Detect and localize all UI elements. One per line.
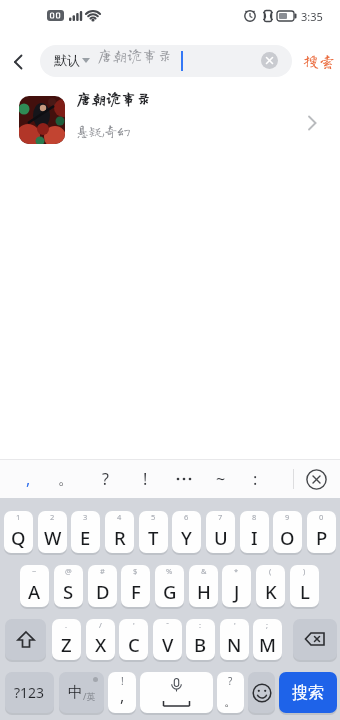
staticText: D <box>96 579 110 604</box>
staticText: @ <box>65 566 72 576</box>
staticText: ?123 <box>14 683 45 702</box>
staticText: Y <box>181 525 192 550</box>
staticText: 搜索 <box>292 683 324 703</box>
staticText: 9 <box>285 512 290 522</box>
staticText: ? <box>228 674 233 688</box>
staticText: 2 <box>50 512 55 522</box>
button[interactable]: ?123 <box>5 672 54 713</box>
staticText: S <box>63 579 74 604</box>
button[interactable] <box>293 619 337 660</box>
staticText: I <box>251 525 258 550</box>
button[interactable]: . <box>52 619 81 660</box>
button[interactable]: @ <box>54 565 83 607</box>
button[interactable] <box>140 672 213 713</box>
button[interactable] <box>248 672 275 713</box>
button[interactable]: , <box>14 460 42 498</box>
staticText: E <box>80 525 91 550</box>
staticText: 8 <box>252 512 257 522</box>
staticText: ' <box>133 620 135 630</box>
button[interactable]: 默认 <box>40 45 292 77</box>
button[interactable]: 7 <box>206 511 235 553</box>
button[interactable]: 。 <box>52 460 80 498</box>
staticText: K <box>265 579 277 604</box>
staticText: 搜索 <box>303 53 336 69</box>
button[interactable] <box>170 460 198 498</box>
button[interactable]: ~ <box>20 565 49 607</box>
button[interactable]: 搜索 <box>298 46 340 76</box>
staticText: 3 <box>83 512 88 522</box>
button[interactable]: ! <box>108 672 136 713</box>
staticText: C <box>128 632 140 657</box>
button[interactable]: ? <box>217 672 244 713</box>
staticText: F <box>131 579 141 604</box>
staticText: / <box>99 620 102 630</box>
staticText: 1 <box>16 512 21 522</box>
button[interactable]: / <box>86 619 115 660</box>
staticText: : <box>253 468 258 490</box>
staticText: /英 <box>83 690 96 702</box>
staticText: & <box>201 566 207 576</box>
button[interactable]: ˇ <box>153 619 182 660</box>
button[interactable]: % <box>155 565 184 607</box>
staticText: ? <box>102 468 109 490</box>
button[interactable] <box>261 52 278 69</box>
button[interactable]: : <box>186 619 215 660</box>
staticText: ' <box>234 620 236 630</box>
button[interactable]: : <box>241 460 269 498</box>
staticText: ; <box>266 620 269 630</box>
button[interactable]: ' <box>119 619 148 660</box>
button[interactable]: ~ <box>207 460 235 498</box>
button[interactable]: 1 <box>4 511 33 553</box>
staticText: N <box>227 632 242 657</box>
button[interactable]: # <box>88 565 117 607</box>
staticText: O <box>280 525 295 550</box>
staticText: * <box>234 566 239 576</box>
staticText: $ <box>133 566 138 576</box>
button[interactable]: ; <box>253 619 282 660</box>
button[interactable]: $ <box>121 565 150 607</box>
staticText: 中 <box>68 683 83 702</box>
button[interactable]: 8 <box>240 511 269 553</box>
staticText: 悬疑,奇幻 <box>76 125 131 138</box>
button[interactable]: ? <box>91 460 119 498</box>
staticText: , <box>120 685 125 707</box>
button[interactable] <box>8 52 28 72</box>
staticText: W <box>44 525 62 550</box>
button[interactable]: * <box>222 565 251 607</box>
staticText: ( <box>269 566 272 576</box>
button[interactable]: 中 <box>59 672 104 713</box>
button[interactable]: ' <box>220 619 249 660</box>
staticText: , <box>26 468 31 490</box>
staticText: B <box>194 632 207 657</box>
staticText: 唐朝诡事录 <box>76 91 152 106</box>
button[interactable]: 唐朝诡事录 <box>0 88 340 156</box>
button[interactable]: 5 <box>139 511 168 553</box>
button[interactable]: 2 <box>38 511 67 553</box>
staticText: ! <box>143 468 148 490</box>
staticText: 0 <box>319 512 324 522</box>
button[interactable] <box>5 619 46 660</box>
button[interactable]: ( <box>256 565 285 607</box>
button[interactable]: ! <box>131 460 159 498</box>
staticText: 6 <box>184 512 189 522</box>
staticText: H <box>197 579 211 604</box>
staticText: ! <box>121 674 124 688</box>
button[interactable]: 搜索 <box>279 672 337 713</box>
button[interactable]: 3 <box>71 511 100 553</box>
staticText: A <box>28 579 41 604</box>
button[interactable]: 0 <box>307 511 336 553</box>
staticText: % <box>166 566 173 576</box>
staticText: 。 <box>58 469 74 489</box>
button[interactable] <box>303 466 329 492</box>
staticText: J <box>234 579 240 604</box>
staticText: ~ <box>32 566 37 576</box>
button[interactable]: 4 <box>105 511 134 553</box>
staticText: V <box>162 632 174 657</box>
staticText: 唐朝诡事录 <box>97 48 173 63</box>
button[interactable]: & <box>189 565 218 607</box>
button[interactable]: 9 <box>273 511 302 553</box>
staticText: 3:35 <box>301 9 323 24</box>
button[interactable]: 6 <box>172 511 201 553</box>
button[interactable]: ) <box>290 565 319 607</box>
staticText: X <box>95 632 107 657</box>
